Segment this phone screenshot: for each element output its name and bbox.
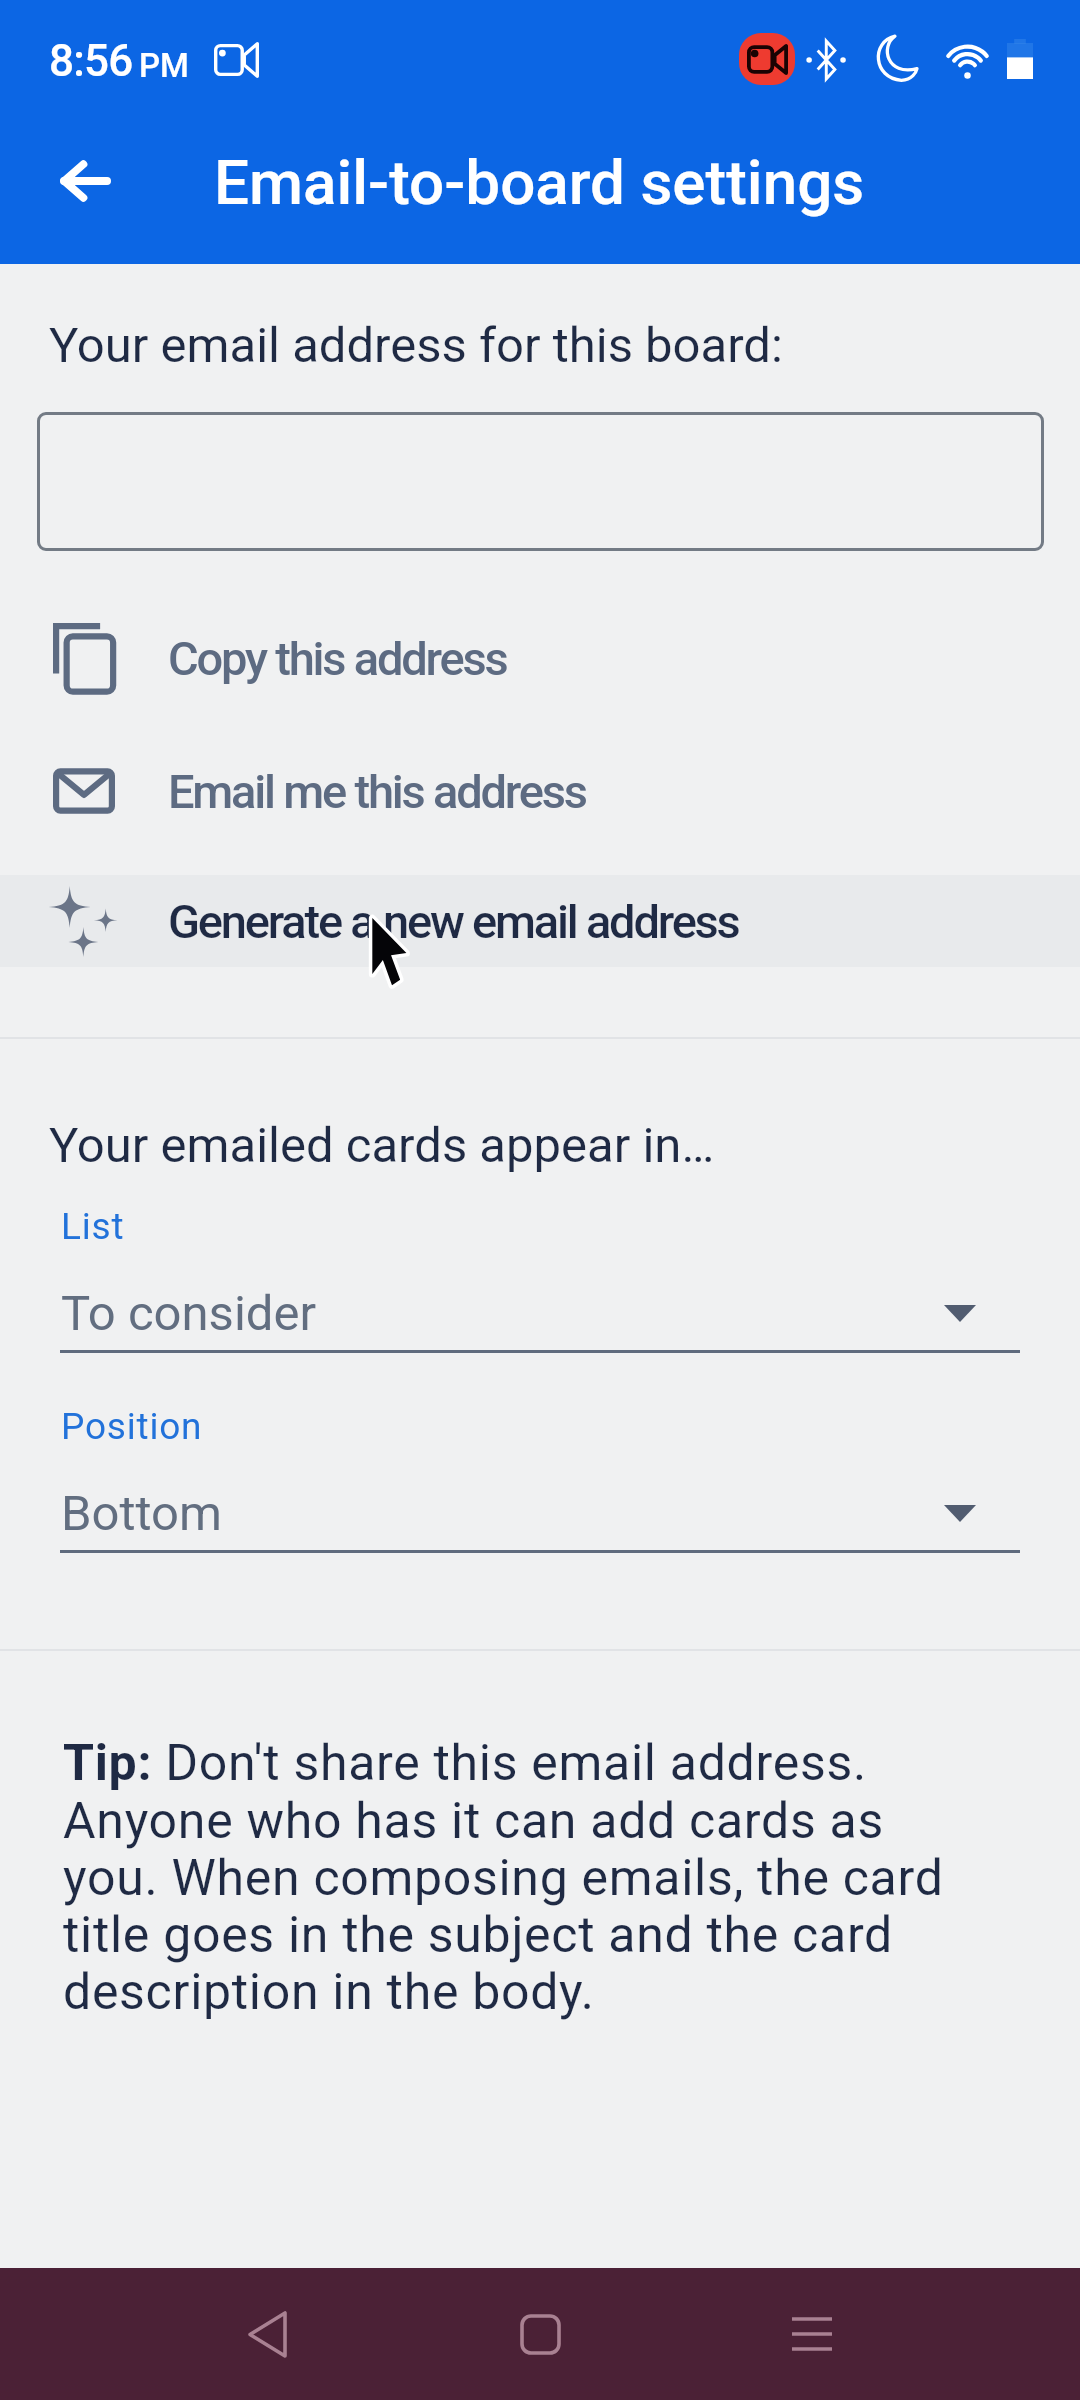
button[interactable]: Position <box>60 1391 1020 1564</box>
staticText: Copy this address <box>168 631 507 686</box>
button[interactable]: Generate a new email address <box>0 875 1080 967</box>
staticText: Tip: Don't share this email address. Any… <box>63 1734 963 2021</box>
button[interactable]: Recent apps <box>757 2290 867 2378</box>
button[interactable]: Email me this address <box>0 745 1080 837</box>
staticText: Your email address for this board: <box>49 317 783 374</box>
staticText: Position <box>61 1405 203 1448</box>
button[interactable]: Home <box>485 2290 595 2378</box>
staticText: Your emailed cards appear in… <box>49 1117 715 1174</box>
staticText: To consider <box>61 1285 317 1342</box>
button[interactable]: Copy this address <box>0 612 1080 704</box>
staticText: 8:56 <box>49 35 133 87</box>
staticText: Email me this address <box>168 764 586 819</box>
button[interactable]: List <box>60 1191 1020 1364</box>
staticText: PM <box>139 46 189 85</box>
staticText: Email-to-board settings <box>214 146 865 219</box>
staticText: Generate a new email address <box>168 894 739 949</box>
button[interactable]: Back <box>35 131 135 231</box>
staticText: Bottom <box>61 1485 222 1542</box>
button[interactable]: Email address <box>37 412 1044 551</box>
button[interactable]: Back <box>212 2290 322 2378</box>
staticText: List <box>61 1205 125 1248</box>
